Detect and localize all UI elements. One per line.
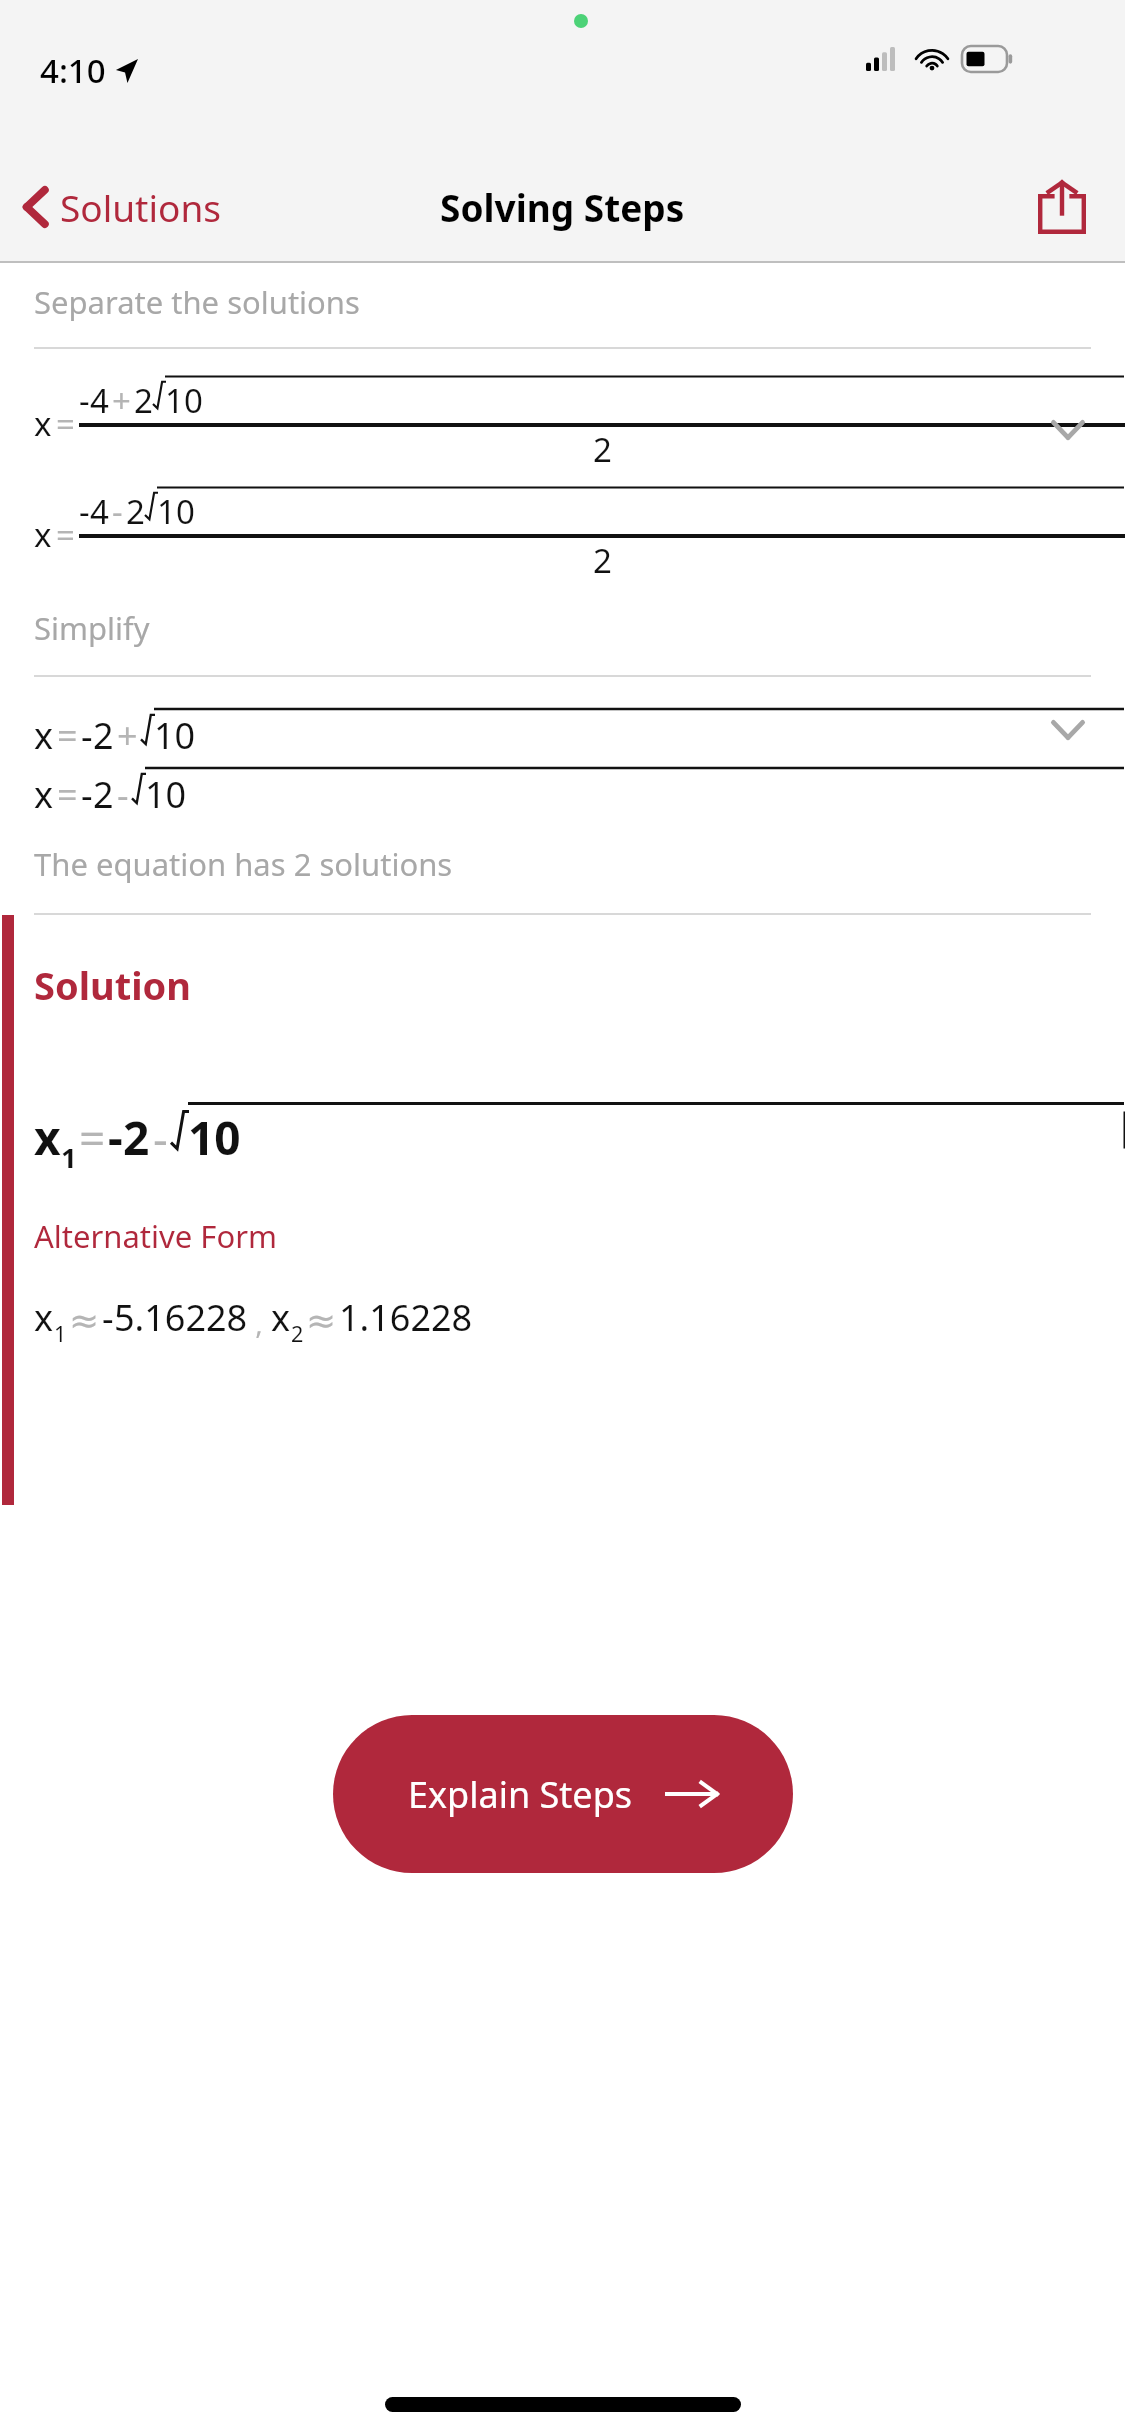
staticText: The equation has 2 solutions (34, 843, 453, 885)
button[interactable]: Expand step (1039, 401, 1097, 459)
staticText: 2 (593, 538, 612, 583)
staticText: - (112, 489, 123, 534)
staticText: 2 (134, 378, 153, 423)
staticText: = (57, 711, 78, 760)
staticText: x (34, 711, 54, 760)
staticText: x (34, 770, 54, 819)
staticText: ≈ (69, 1300, 100, 1342)
staticText: = (79, 1106, 106, 1169)
staticText: x (271, 1293, 291, 1342)
staticText: Explain Steps (408, 1770, 633, 1819)
staticText: 2 (123, 1106, 150, 1169)
staticText: 10 (165, 378, 203, 423)
staticText: Solution (34, 959, 192, 1011)
staticText: - (102, 1293, 114, 1342)
staticText: - (79, 378, 90, 423)
staticText: = (56, 401, 75, 446)
staticText: - (117, 770, 129, 819)
staticText: - (81, 711, 93, 760)
staticText: 2 (291, 1319, 304, 1348)
staticText: - (153, 1106, 168, 1169)
staticText: 4 (90, 489, 109, 534)
button[interactable]: Share (1027, 172, 1097, 242)
staticText: + (117, 711, 138, 760)
staticText: , (248, 1304, 271, 1342)
staticText: x (34, 1293, 54, 1342)
staticText: Alternative Form (34, 1215, 277, 1257)
staticText: x (34, 401, 52, 446)
staticText: = (56, 512, 75, 557)
staticText: x (34, 1106, 61, 1169)
staticText: 2 (126, 489, 145, 534)
staticText: Separate the solutions (34, 281, 360, 323)
button[interactable]: Expand step (1039, 701, 1097, 759)
staticText: + (112, 378, 131, 423)
staticText: 4 (90, 378, 109, 423)
staticText: Solving Steps (440, 182, 685, 232)
staticText: 1.16228 (339, 1293, 473, 1342)
staticText: 1 (54, 1319, 67, 1348)
staticText: 2 (93, 770, 114, 819)
staticText: 5.16228 (114, 1293, 248, 1342)
staticText: 10 (188, 1106, 241, 1169)
staticText: 10 (157, 489, 195, 534)
staticText: x (34, 512, 52, 557)
staticText: Simplify (34, 607, 150, 649)
staticText: ≈ (306, 1300, 337, 1342)
staticText: Solutions (60, 182, 221, 232)
button[interactable]: Explain Steps (333, 1715, 793, 1873)
staticText: 10 (145, 770, 187, 819)
staticText: - (79, 489, 90, 534)
staticText: 4:10 (40, 48, 106, 93)
staticText: = (57, 770, 78, 819)
staticText: 10 (154, 711, 196, 760)
staticText: - (108, 1106, 123, 1169)
staticText: 2 (593, 427, 612, 472)
staticText: - (81, 770, 93, 819)
staticText: 2 (93, 711, 114, 760)
button[interactable]: Solutions (0, 174, 235, 240)
staticText: 1 (61, 1138, 77, 1176)
